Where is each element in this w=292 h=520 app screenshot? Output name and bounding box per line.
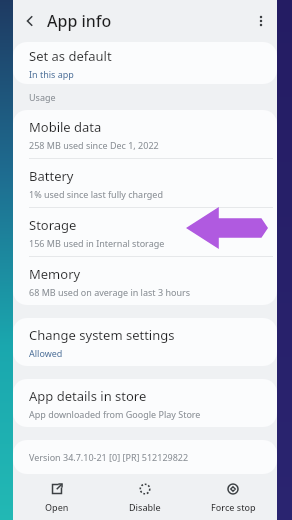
button[interactable]: Battery (13, 159, 277, 207)
button[interactable]: Force stop (189, 474, 277, 520)
staticText: 68 MB used on average in last 3 hours (29, 286, 190, 298)
staticText: App details in store (29, 387, 147, 405)
staticText: Allowed (29, 347, 63, 359)
staticText: Storage (29, 216, 77, 234)
staticText: Memory (29, 265, 81, 283)
button[interactable]: More options (245, 5, 277, 37)
staticText: App downloaded from Google Play Store (29, 408, 201, 420)
button[interactable]: Storage (13, 208, 277, 256)
button[interactable]: Back (13, 4, 47, 38)
staticText: 1% used since last fully charged (29, 188, 163, 200)
staticText: Version 34.7.10-21 [0] [PR] 512129822 (29, 451, 189, 463)
staticText: Open (45, 501, 69, 513)
button[interactable]: Open (13, 474, 101, 520)
staticText: Usage (29, 91, 56, 103)
staticText: Mobile data (29, 118, 102, 136)
staticText: In this app (29, 68, 74, 80)
staticText: 258 MB used since Dec 1, 2022 (29, 139, 159, 151)
button[interactable]: Disable (101, 474, 189, 520)
button[interactable]: Change system settings (13, 318, 277, 366)
staticText: Change system settings (29, 326, 175, 344)
staticText: 156 MB used in Internal storage (29, 237, 165, 249)
staticText: Force stop (211, 501, 256, 513)
staticText: App info (47, 10, 112, 32)
button[interactable]: Memory (13, 257, 277, 305)
button[interactable]: Set as default (13, 42, 277, 84)
button[interactable]: App details in store (13, 379, 277, 427)
staticText: Set as default (29, 47, 112, 65)
staticText: Battery (29, 167, 74, 185)
staticText: Disable (129, 501, 161, 513)
button[interactable]: Mobile data (13, 110, 277, 158)
